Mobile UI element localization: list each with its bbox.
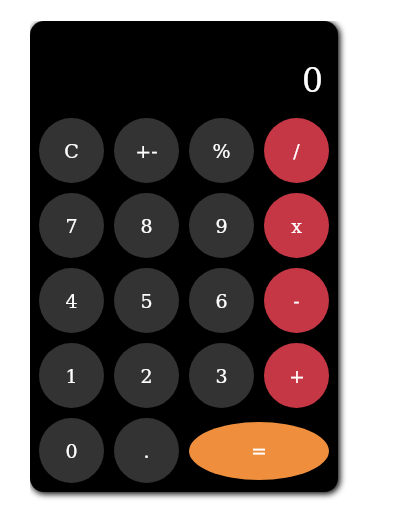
button[interactable]: Two xyxy=(114,343,179,408)
button[interactable]: One xyxy=(39,343,104,408)
staticText: / xyxy=(293,140,300,162)
button[interactable]: Seven xyxy=(39,193,104,258)
staticText: 5 xyxy=(140,290,153,312)
button[interactable]: Add xyxy=(264,343,329,408)
button[interactable]: Subtract xyxy=(264,268,329,333)
staticText: 0 xyxy=(302,61,323,99)
staticText: 3 xyxy=(215,365,228,387)
staticText: x xyxy=(291,215,302,237)
staticText: 6 xyxy=(215,290,228,312)
staticText: . xyxy=(143,440,150,462)
button[interactable]: Six xyxy=(189,268,254,333)
staticText: +- xyxy=(135,140,158,162)
button[interactable]: Divide xyxy=(264,118,329,183)
button[interactable]: Decimal point xyxy=(114,418,179,483)
staticText: 2 xyxy=(140,365,153,387)
button[interactable]: Nine xyxy=(189,193,254,258)
button[interactable]: Toggle sign xyxy=(114,118,179,183)
staticText: 7 xyxy=(65,215,78,237)
button[interactable]: Five xyxy=(114,268,179,333)
button[interactable]: Equals xyxy=(189,418,329,483)
staticText: % xyxy=(212,140,231,162)
staticText: = xyxy=(251,440,267,462)
staticText: C xyxy=(64,140,79,162)
staticText: 0 xyxy=(65,440,78,462)
staticText: - xyxy=(293,290,300,312)
button[interactable]: Clear xyxy=(39,118,104,183)
button[interactable]: Eight xyxy=(114,193,179,258)
staticText: 1 xyxy=(65,365,78,387)
staticText: 8 xyxy=(140,215,153,237)
button[interactable]: Three xyxy=(189,343,254,408)
staticText: 4 xyxy=(65,290,78,312)
button[interactable]: Zero xyxy=(39,418,104,483)
staticText: + xyxy=(289,365,305,387)
button[interactable]: Percent xyxy=(189,118,254,183)
staticText: 9 xyxy=(215,215,228,237)
button[interactable]: Four xyxy=(39,268,104,333)
button[interactable]: Multiply xyxy=(264,193,329,258)
